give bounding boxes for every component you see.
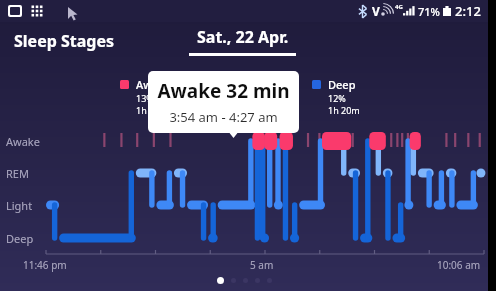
staticText: 5 am: [250, 258, 274, 272]
staticText: 4G: [395, 3, 403, 11]
button[interactable]: Page 3: [243, 278, 248, 283]
staticText: Sat., 22 Apr.: [197, 26, 289, 48]
staticText: Awake: [6, 134, 40, 149]
button[interactable]: Page 1: [217, 277, 224, 284]
staticText: 3:54 am - 4:27 am: [169, 108, 278, 126]
button[interactable]: Page 5: [267, 278, 272, 283]
staticText: 11:46 pm: [23, 258, 67, 272]
button[interactable]: Page 4: [255, 278, 260, 283]
staticText: 13%: [136, 92, 154, 104]
staticText: 71%: [418, 4, 440, 19]
staticText: V: [372, 3, 380, 19]
staticText: 2:12: [455, 2, 481, 20]
staticText: 12%: [328, 92, 346, 104]
button[interactable]: Sat., 22 Apr.: [189, 26, 296, 56]
staticText: Awake 32 min: [157, 78, 290, 104]
staticText: Deep: [328, 77, 356, 92]
staticText: REM: [6, 166, 29, 181]
staticText: 1h 20m: [328, 104, 360, 116]
button[interactable]: Awake: [120, 77, 171, 116]
staticText: 1h 28m: [136, 104, 168, 116]
staticText: Light: [6, 198, 33, 213]
staticText: Awake: [136, 77, 171, 92]
staticText: 10:06 am: [437, 258, 481, 272]
staticText: Deep: [6, 231, 34, 246]
button[interactable]: Deep: [312, 77, 360, 116]
button[interactable]: Sleep Stages: [14, 30, 115, 52]
button[interactable]: Awake 32 min: [148, 71, 299, 133]
button[interactable]: Page 2: [231, 278, 236, 283]
